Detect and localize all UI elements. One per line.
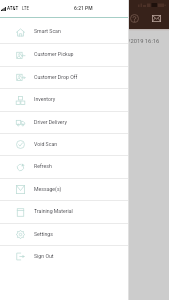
staticText: Inventory: [34, 96, 56, 102]
staticText: Void Scan: [34, 141, 58, 147]
staticText: Driver Delivery: [34, 119, 67, 125]
staticText: 6:21 PM: [74, 5, 93, 11]
staticText: Customer Pickup: [34, 51, 74, 57]
staticText: AT&T: [7, 6, 19, 11]
staticText: Smart Scan: [34, 28, 61, 34]
button[interactable]: Refresh: [0, 156, 129, 178]
button[interactable]: Driver Delivery: [0, 112, 129, 133]
button[interactable]: Messages: [148, 10, 165, 27]
staticText: /2019 16:16: [128, 38, 160, 45]
staticText: Settings: [34, 231, 53, 237]
button[interactable]: Sign Out: [0, 246, 129, 267]
staticText: Training Material: [34, 208, 73, 214]
staticText: LTE: [22, 6, 30, 11]
button[interactable]: Message(s): [0, 179, 129, 200]
button[interactable]: Customer Pickup: [0, 44, 129, 66]
button[interactable]: Void Scan: [0, 134, 129, 155]
staticText: Refresh: [34, 163, 52, 169]
button[interactable]: Customer Drop Off: [0, 67, 129, 88]
button[interactable]: Inventory: [0, 89, 129, 111]
button[interactable]: Help: [126, 10, 142, 26]
button[interactable]: Training Material: [0, 201, 129, 223]
button[interactable]: Settings: [0, 224, 129, 245]
button[interactable]: Smart Scan: [0, 21, 129, 43]
staticText: Message(s): [34, 186, 62, 192]
staticText: Sign Out: [34, 253, 54, 259]
staticText: Customer Drop Off: [34, 74, 78, 80]
